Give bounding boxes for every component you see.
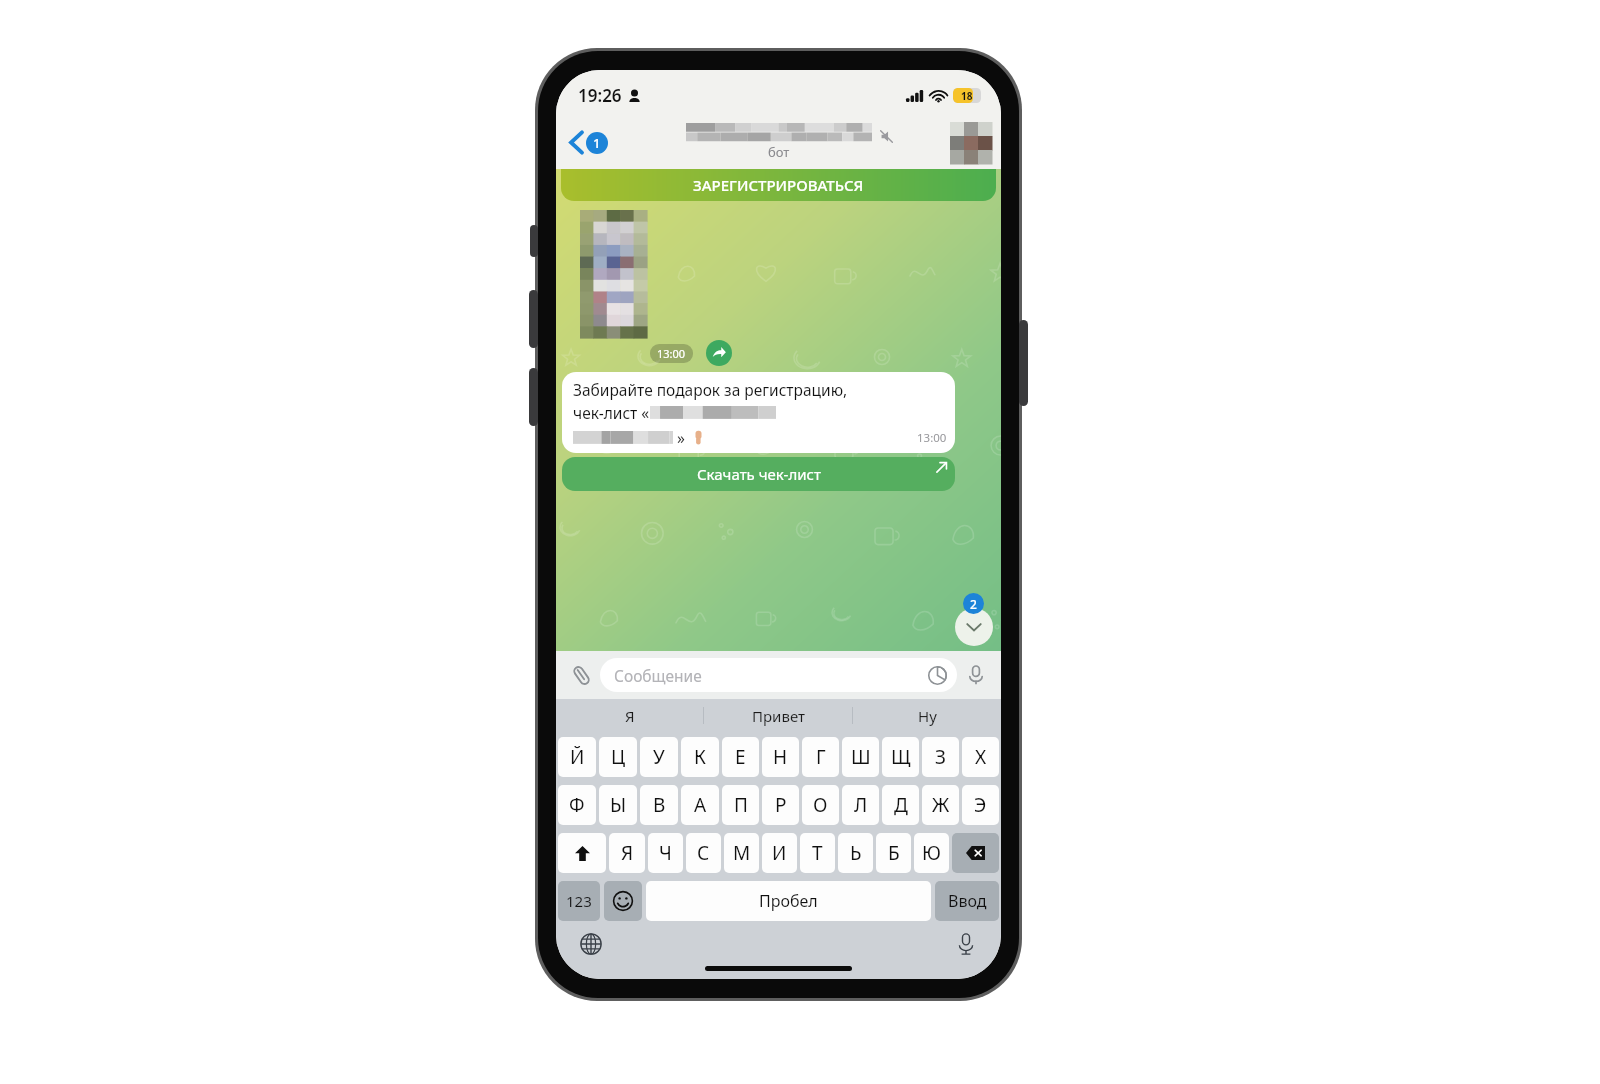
staticText: Н <box>773 744 788 770</box>
staticText: К <box>694 744 706 770</box>
button[interactable]: ЗАРЕГИСТРИРОВАТЬСЯ <box>561 169 996 201</box>
button[interactable]: Scroll to bottom <box>955 608 993 646</box>
button[interactable]: Ж <box>922 785 959 825</box>
button[interactable]: Stickers <box>925 663 949 687</box>
button[interactable]: Е <box>722 737 759 777</box>
staticText: 1 <box>593 134 601 152</box>
button[interactable]: М <box>724 833 759 873</box>
button[interactable]: Change language <box>576 929 606 959</box>
staticText: З <box>935 744 946 770</box>
button[interactable]: П <box>722 785 759 825</box>
staticText: И <box>772 840 787 866</box>
button[interactable]: Сообщение <box>600 658 957 692</box>
button[interactable]: О <box>802 785 839 825</box>
staticText: В <box>653 792 666 818</box>
staticText: бот <box>768 143 790 161</box>
staticText: Я <box>621 840 634 866</box>
staticText: Щ <box>891 744 911 770</box>
button[interactable]: А <box>681 785 719 825</box>
staticText: Д <box>894 792 908 818</box>
button[interactable]: Dictate <box>951 929 981 959</box>
staticText: Ы <box>610 792 627 818</box>
button[interactable]: В <box>640 785 678 825</box>
button[interactable]: Ч <box>648 833 683 873</box>
staticText: Й <box>570 744 585 770</box>
button[interactable]: Ь <box>838 833 873 873</box>
button[interactable]: Щ <box>882 737 919 777</box>
staticText: Т <box>812 840 823 866</box>
button[interactable]: Забирайте подарок за регистрацию, <box>562 372 955 453</box>
button[interactable]: Profile <box>950 122 992 164</box>
staticText: Ввод <box>948 890 987 912</box>
button[interactable]: Photo <box>580 210 647 338</box>
button[interactable]: С <box>686 833 721 873</box>
staticText: Скачать чек-лист <box>697 464 821 484</box>
staticText: 19:26 <box>578 84 622 107</box>
staticText: Я <box>625 706 635 726</box>
staticText: Э <box>974 792 987 818</box>
button[interactable]: Я <box>609 833 645 873</box>
staticText: Ш <box>851 744 871 770</box>
staticText: О <box>813 792 828 818</box>
button[interactable]: Й <box>558 737 596 777</box>
button[interactable]: Э <box>962 785 999 825</box>
button[interactable]: У <box>640 737 678 777</box>
button[interactable]: Т <box>800 833 835 873</box>
button[interactable]: Г <box>802 737 839 777</box>
button[interactable]: Н <box>762 737 799 777</box>
button[interactable]: К <box>681 737 719 777</box>
button[interactable]: Attach <box>566 660 596 690</box>
staticText: Ж <box>932 792 950 818</box>
button[interactable]: Back <box>566 125 612 160</box>
staticText: Ф <box>569 792 585 818</box>
button[interactable]: Ц <box>599 737 637 777</box>
staticText: Л <box>854 792 868 818</box>
button[interactable]: Ю <box>914 833 949 873</box>
staticText: Х <box>975 744 987 770</box>
button[interactable]: Скачать чек-лист <box>562 457 955 491</box>
button[interactable]: Backspace <box>952 833 999 873</box>
button[interactable]: Emoji <box>604 881 642 921</box>
staticText: 123 <box>566 891 592 911</box>
staticText: Ну <box>918 706 937 726</box>
staticText: С <box>697 840 710 866</box>
button[interactable]: Shift <box>558 833 606 873</box>
staticText: Ю <box>922 840 941 866</box>
staticText: Пробел <box>759 890 818 912</box>
staticText: М <box>733 840 751 866</box>
staticText: Е <box>735 744 746 770</box>
staticText: П <box>734 792 748 818</box>
button[interactable]: Ш <box>842 737 879 777</box>
button[interactable]: Х <box>962 737 999 777</box>
button[interactable]: Р <box>762 785 799 825</box>
button[interactable]: Я <box>556 699 703 732</box>
button[interactable]: Пробел <box>646 881 931 921</box>
button[interactable]: З <box>922 737 959 777</box>
staticText: 18 <box>961 89 973 103</box>
staticText: Р <box>775 792 787 818</box>
button[interactable]: Voice message <box>961 660 991 690</box>
staticText: Ц <box>611 744 626 770</box>
button[interactable]: Л <box>842 785 879 825</box>
button[interactable]: Forward <box>706 340 732 366</box>
button[interactable]: Ф <box>558 785 596 825</box>
staticText: Г <box>816 744 826 770</box>
button[interactable]: И <box>762 833 797 873</box>
staticText: Ч <box>659 840 672 866</box>
staticText: 2 <box>970 596 977 612</box>
staticText: 13:00 <box>917 430 947 446</box>
staticText: 13:00 <box>657 346 686 361</box>
staticText: Привет <box>752 706 805 726</box>
button[interactable]: Д <box>882 785 919 825</box>
button[interactable]: Ы <box>599 785 637 825</box>
button[interactable]: Ну <box>853 699 1001 732</box>
staticText: У <box>653 744 665 770</box>
button[interactable]: Б <box>876 833 911 873</box>
button[interactable]: Ввод <box>935 881 999 921</box>
staticText: Сообщение <box>614 665 702 686</box>
staticText: Б <box>888 840 900 866</box>
button[interactable]: 123 <box>558 881 600 921</box>
staticText: А <box>694 792 707 818</box>
staticText: Забирайте подарок за регистрацию, <box>573 379 848 400</box>
button[interactable]: Привет <box>704 699 852 732</box>
